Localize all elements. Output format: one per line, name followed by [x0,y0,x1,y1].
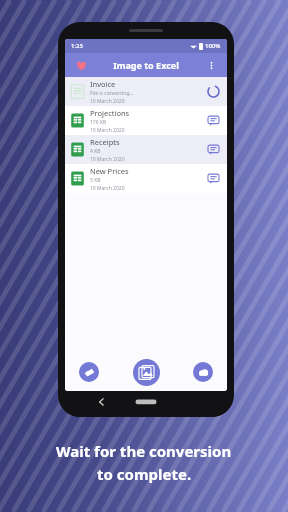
staticText: 10 March 2020 [90,127,125,134]
staticText: File is converting... [90,90,134,97]
staticText: 5 KB [90,177,101,184]
staticText: Wait for the conversion [56,441,232,461]
button[interactable]: New Prices [65,164,227,193]
staticText: to complete. [97,464,192,484]
staticText: 1:25 [71,42,83,50]
button[interactable]: Receipts [65,135,227,164]
button[interactable]: Cloud storage [193,362,213,382]
button[interactable]: Pick image [133,359,160,386]
button[interactable]: Converting [205,83,222,100]
staticText: New Prices [90,166,129,176]
button[interactable]: Comments [205,141,222,158]
staticText: Projections [90,108,130,118]
staticText: Image to Excel [90,59,202,71]
staticText: 176 KB [90,119,107,126]
staticText: 4 KB [90,148,101,155]
button[interactable]: Invoice [65,77,227,106]
button[interactable]: Favorites [72,56,90,74]
staticText: 10 March 2020 [90,185,125,192]
button[interactable]: Projections [65,106,227,135]
button[interactable]: Comments [205,112,222,129]
staticText: 10 March 2020 [90,156,125,163]
staticText: Invoice [90,79,116,89]
staticText: 100% [205,42,221,50]
button[interactable]: Scan document [79,362,99,382]
button[interactable]: More options [202,56,220,74]
staticText: 10 March 2020 [90,98,125,105]
button[interactable]: Comments [205,170,222,187]
staticText: Receipts [90,137,120,147]
